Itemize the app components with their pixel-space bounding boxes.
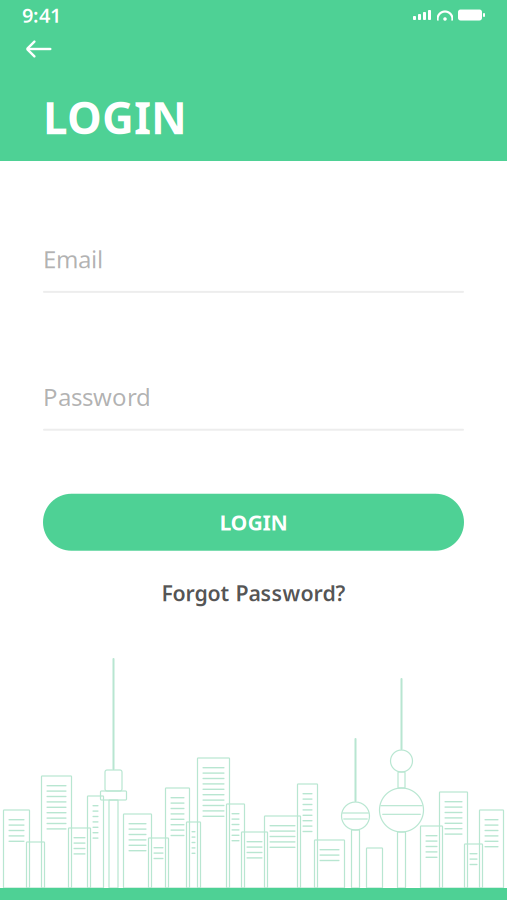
button[interactable]: Email (43, 243, 464, 293)
staticText: Email (43, 243, 103, 275)
button[interactable]: Password (43, 381, 464, 431)
staticText: Forgot Password? (161, 579, 345, 607)
staticText: Password (43, 381, 151, 413)
button[interactable]: Forgot Password? (43, 573, 464, 613)
button[interactable]: Back (0, 30, 507, 68)
staticText: 9:41 (22, 2, 61, 28)
button[interactable]: LOGIN (43, 494, 464, 551)
staticText: LOGIN (219, 508, 287, 536)
staticText: LOGIN (43, 88, 187, 146)
